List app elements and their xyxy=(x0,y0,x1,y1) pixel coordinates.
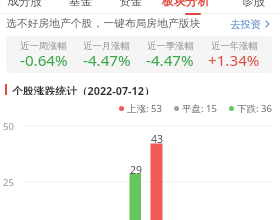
staticText: -4.47% xyxy=(146,50,194,71)
staticText: 50 xyxy=(3,120,14,133)
staticText: 板块分析 xyxy=(162,0,210,9)
staticText: +1.34% xyxy=(208,50,260,71)
staticText: 25 xyxy=(3,176,14,189)
staticText: 平盘: 15 xyxy=(182,102,217,114)
staticText: 资金 xyxy=(119,0,143,9)
button[interactable]: 平盘: 15 xyxy=(174,102,217,114)
staticText: 43 xyxy=(151,132,164,146)
staticText: 近一月涨幅 xyxy=(83,40,130,52)
staticText: 选不好房地产个股，一键布局房地产版块 xyxy=(6,17,201,31)
staticText: 个股涨跌统计（2022-07-12） xyxy=(12,83,155,95)
staticText: 诊股 xyxy=(242,0,266,9)
staticText: -0.64% xyxy=(20,50,68,71)
staticText: 成分股 xyxy=(7,0,43,9)
button[interactable]: 成分股 xyxy=(0,0,53,9)
staticText: 基金 xyxy=(69,0,93,9)
staticText: 29 xyxy=(130,163,143,177)
button[interactable]: 选不好房地产个股，一键布局房地产版块 xyxy=(0,14,280,34)
staticText: 上涨: 53 xyxy=(127,102,162,114)
button[interactable]: 资金 xyxy=(103,0,159,9)
button[interactable]: 诊股 xyxy=(226,0,280,9)
button[interactable]: 基金 xyxy=(53,0,109,9)
button[interactable]: 板块分析 xyxy=(158,0,214,9)
button[interactable]: 上涨: 53 xyxy=(119,102,162,114)
button[interactable]: 下跌: 36 xyxy=(229,102,272,114)
button[interactable]: 个股涨跌统计（2022-07-12） xyxy=(5,83,155,95)
staticText: 去投资 xyxy=(230,18,262,31)
staticText: 近一周涨幅 xyxy=(20,40,67,52)
staticText: 下跌: 36 xyxy=(237,102,272,114)
button[interactable]: 近一周涨幅 xyxy=(6,36,272,73)
staticText: -4.47% xyxy=(83,50,131,71)
staticText: 近一季涨幅 xyxy=(147,40,194,52)
staticText: 近一年涨幅 xyxy=(211,40,258,52)
